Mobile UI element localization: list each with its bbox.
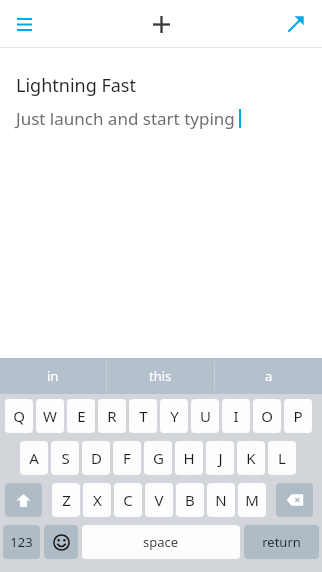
staticText: G (153, 448, 164, 468)
button[interactable]: in (0, 358, 106, 394)
staticText: S (61, 448, 70, 468)
button[interactable]: New note (141, 4, 181, 44)
button[interactable]: I (222, 399, 250, 433)
button[interactable]: return (244, 525, 319, 559)
staticText: U (200, 406, 211, 426)
staticText: X (93, 490, 102, 510)
staticText: D (91, 448, 102, 468)
staticText: a (265, 367, 273, 385)
button[interactable]: L (268, 441, 296, 475)
staticText: V (154, 490, 164, 510)
staticText: H (183, 448, 195, 468)
staticText: this (149, 367, 172, 385)
button[interactable]: V (145, 483, 173, 517)
button[interactable]: Emoji (44, 525, 78, 559)
button[interactable]: N (207, 483, 235, 517)
button[interactable]: F (113, 441, 141, 475)
button[interactable]: D (82, 441, 110, 475)
staticText: B (185, 490, 195, 510)
button[interactable]: a (215, 358, 322, 394)
staticText: in (47, 367, 59, 385)
staticText: Lightning Fast (16, 73, 136, 98)
button[interactable]: Shift (5, 483, 42, 517)
button[interactable]: Backspace (276, 483, 313, 517)
button[interactable]: P (284, 399, 312, 433)
button[interactable]: J (206, 441, 234, 475)
button[interactable]: H (175, 441, 203, 475)
button[interactable]: W (36, 399, 64, 433)
staticText: 123 (10, 533, 33, 551)
staticText: F (123, 448, 131, 468)
button[interactable]: M (238, 483, 266, 517)
button[interactable]: space (82, 525, 240, 559)
button[interactable]: Menu (4, 4, 44, 44)
button[interactable]: Q (5, 399, 33, 433)
staticText: N (215, 490, 227, 510)
staticText: Z (62, 490, 71, 510)
staticText: W (43, 406, 57, 426)
staticText: Q (13, 406, 25, 426)
staticText: Y (170, 406, 179, 426)
staticText: M (245, 490, 259, 510)
button[interactable]: G (144, 441, 172, 475)
staticText: space (143, 533, 179, 551)
staticText: K (246, 448, 256, 468)
button[interactable]: Share (276, 4, 316, 44)
staticText: I (233, 406, 239, 426)
button[interactable]: C (114, 483, 142, 517)
button[interactable]: R (98, 399, 126, 433)
staticText: Just launch and start typing (16, 107, 235, 130)
button[interactable]: Z (52, 483, 80, 517)
staticText: return (262, 533, 301, 551)
staticText: C (123, 490, 133, 510)
staticText: A (29, 448, 39, 468)
staticText: R (107, 406, 117, 426)
button[interactable]: K (237, 441, 265, 475)
staticText: T (139, 406, 148, 426)
button[interactable]: this (107, 358, 214, 394)
button[interactable]: O (253, 399, 281, 433)
staticText: P (293, 406, 303, 426)
button[interactable]: Y (160, 399, 188, 433)
button[interactable]: B (176, 483, 204, 517)
button[interactable]: T (129, 399, 157, 433)
button[interactable]: E (67, 399, 95, 433)
button[interactable]: A (20, 441, 48, 475)
button[interactable]: S (51, 441, 79, 475)
staticText: J (218, 448, 223, 468)
button[interactable]: X (83, 483, 111, 517)
button[interactable]: 123 (3, 525, 40, 559)
staticText: L (278, 448, 286, 468)
button[interactable]: U (191, 399, 219, 433)
staticText: E (77, 406, 86, 426)
staticText: O (261, 406, 273, 426)
